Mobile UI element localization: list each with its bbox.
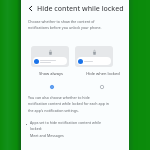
staticText: Apps set to hide notification content wh… [30, 120, 101, 139]
staticText: Hide content while locked [37, 4, 124, 14]
button[interactable]: Back [21, 0, 129, 17]
button[interactable]: Back [25, 3, 36, 14]
button[interactable]: Hide when locked [97, 82, 106, 91]
staticText: You can also choose whether to hide noti… [28, 95, 136, 114]
staticText: Hide when locked [86, 71, 120, 76]
button[interactable]: Show always [47, 82, 56, 91]
button[interactable]: Show always [29, 71, 72, 76]
staticText: Show always [39, 71, 63, 76]
staticText: Choose whether to show the content of no… [28, 19, 136, 31]
button[interactable] [31, 46, 69, 67]
button[interactable] [75, 46, 113, 67]
button[interactable]: Hide when locked [81, 71, 124, 76]
